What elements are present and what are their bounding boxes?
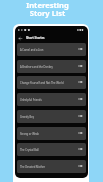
button[interactable]: The Crystal Ball: [17, 143, 86, 156]
staticText: The Crystal Ball: [20, 148, 39, 152]
button[interactable]: Back: [18, 36, 23, 41]
staticText: Strong or Weak: [20, 132, 39, 136]
button[interactable]: A Brothers and the Donkey: [17, 60, 86, 73]
button[interactable]: Greedy Boy: [17, 110, 86, 123]
staticText: Change Yourself and Not The World: [20, 81, 64, 85]
button[interactable]: Strong or Weak: [17, 127, 86, 140]
staticText: A Camel and a Lion: [20, 48, 44, 52]
staticText: Interesting Story List: [0, 0, 95, 18]
staticText: Unhelpful Friends: [20, 98, 42, 102]
button[interactable]: A Camel and a Lion: [17, 43, 86, 56]
button[interactable]: Change Yourself and Not The World: [17, 76, 86, 89]
staticText: The Devoted Mother: [20, 165, 46, 169]
staticText: A Brothers and the Donkey: [20, 65, 53, 69]
staticText: Short Stories: [26, 36, 45, 40]
button[interactable]: Unhelpful Friends: [17, 93, 86, 106]
button[interactable]: The Devoted Mother: [17, 160, 86, 173]
staticText: Greedy Boy: [20, 115, 34, 119]
